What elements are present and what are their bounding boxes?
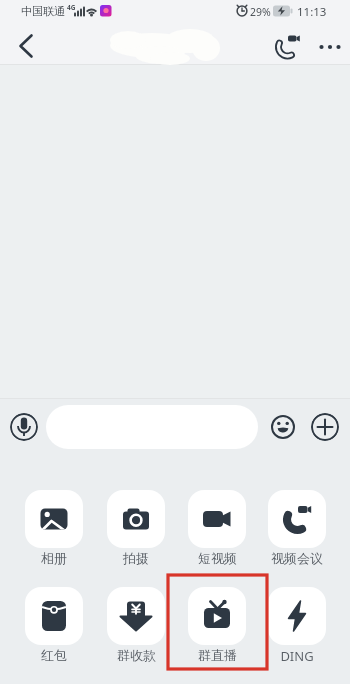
staticText: 4G bbox=[67, 3, 76, 12]
button[interactable] bbox=[311, 413, 339, 441]
button[interactable] bbox=[107, 587, 165, 645]
button[interactable] bbox=[188, 587, 246, 645]
button[interactable] bbox=[25, 490, 83, 548]
button[interactable] bbox=[107, 490, 165, 548]
button[interactable] bbox=[268, 587, 326, 645]
button[interactable] bbox=[270, 30, 306, 64]
button[interactable] bbox=[270, 414, 296, 440]
button[interactable] bbox=[46, 405, 258, 449]
staticText: 相册 bbox=[41, 550, 67, 566]
staticText: 群收款 bbox=[117, 647, 156, 663]
staticText: 中国联通 bbox=[21, 4, 65, 18]
button[interactable] bbox=[312, 33, 346, 61]
button[interactable] bbox=[188, 490, 246, 548]
staticText: 拍摄 bbox=[123, 550, 149, 566]
button[interactable] bbox=[268, 490, 326, 548]
staticText: 短视频 bbox=[198, 550, 237, 566]
staticText: 红包 bbox=[41, 647, 67, 663]
button[interactable] bbox=[8, 30, 44, 62]
staticText: 群直播 bbox=[198, 647, 237, 663]
staticText: 29% bbox=[250, 5, 271, 19]
staticText: DING bbox=[280, 647, 314, 665]
button[interactable] bbox=[25, 587, 83, 645]
staticText: 视频会议 bbox=[271, 550, 323, 566]
button[interactable] bbox=[10, 413, 38, 441]
staticText: 11:13 bbox=[297, 4, 327, 20]
